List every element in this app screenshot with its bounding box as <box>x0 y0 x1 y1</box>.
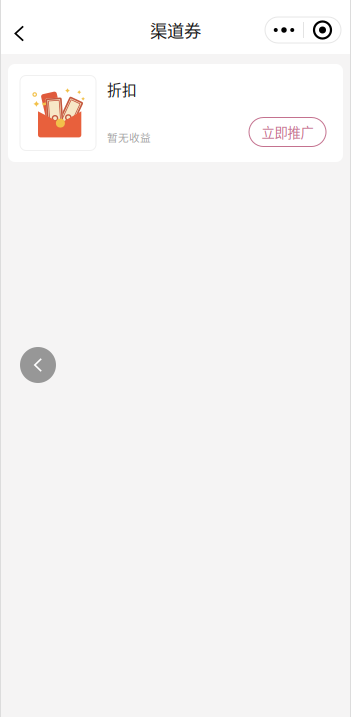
button[interactable]: Back <box>0 8 48 52</box>
staticText: 立即推广 <box>261 122 313 142</box>
staticText: 折扣 <box>107 78 137 100</box>
staticText: 渠道券 <box>150 17 201 43</box>
staticText: 暂无收益 <box>107 129 151 145</box>
button[interactable]: 立即推广 <box>249 117 326 146</box>
button[interactable]: Back <box>20 347 56 383</box>
button[interactable]: More options <box>265 17 351 43</box>
